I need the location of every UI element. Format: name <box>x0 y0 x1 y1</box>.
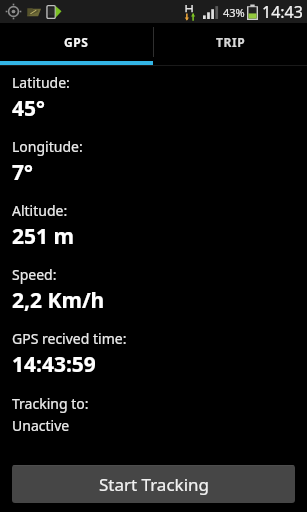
staticText: 251 m <box>12 222 74 251</box>
staticText: GPS <box>64 34 89 50</box>
button[interactable]: GPS <box>0 23 153 61</box>
staticText: 7° <box>12 158 33 187</box>
staticText: 45° <box>12 94 45 123</box>
staticText: Unactive <box>12 416 70 435</box>
button[interactable]: TRIP <box>154 23 307 61</box>
staticText: Speed: <box>12 265 57 284</box>
staticText: 43% <box>223 5 245 20</box>
staticText: TRIP <box>216 34 246 50</box>
staticText: Altitude: <box>12 201 68 220</box>
button[interactable]: Start Tracking <box>12 465 295 503</box>
staticText: 14:43:59 <box>12 350 96 379</box>
staticText: 14:43 <box>262 1 303 23</box>
staticText: Longitude: <box>12 137 83 156</box>
staticText: 2,2 Km/h <box>12 286 105 315</box>
staticText: Start Tracking <box>99 473 209 496</box>
staticText: Latitude: <box>12 73 70 92</box>
staticText: Tracking to: <box>12 394 89 413</box>
staticText: GPS recived time: <box>12 329 127 348</box>
